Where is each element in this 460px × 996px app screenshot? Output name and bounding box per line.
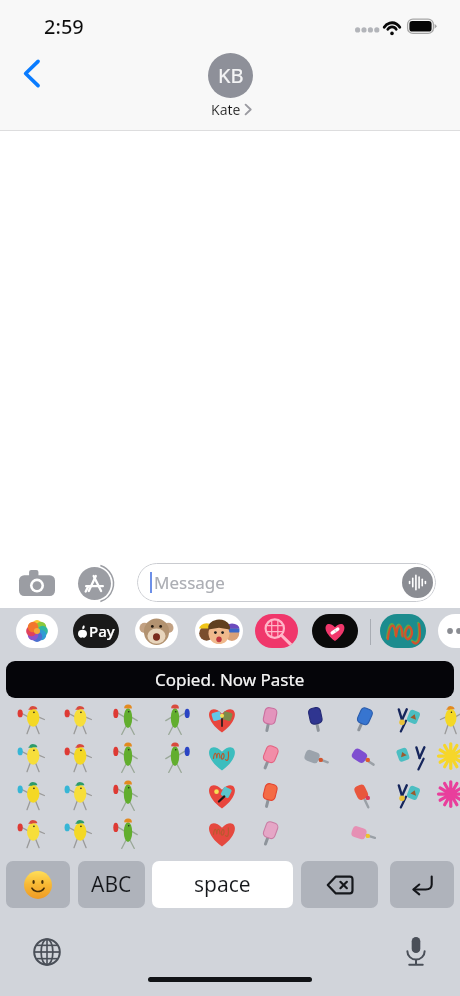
button[interactable]: Change keyboard: [26, 931, 67, 972]
button[interactable]: space: [152, 861, 293, 908]
button[interactable]: Sticker 18: [339, 739, 386, 777]
button[interactable]: Sticker 8: [339, 701, 386, 739]
button[interactable]: Sticker 32: [57, 815, 104, 853]
button[interactable]: Stickers: [312, 614, 358, 648]
button[interactable]: Sticker 31: [10, 815, 57, 853]
button[interactable]: Sticker 13: [104, 739, 151, 777]
button[interactable]: Sticker 19: [386, 739, 433, 777]
staticText: Message: [154, 571, 225, 594]
button[interactable]: Audio message: [402, 567, 433, 598]
button[interactable]: Sticker 36: [245, 815, 292, 853]
button[interactable]: Sticker 9: [386, 701, 433, 739]
button[interactable]: GIF search: [255, 614, 298, 648]
staticText: 2:59: [44, 13, 84, 40]
staticText: KB: [218, 62, 244, 89]
button[interactable]: Sticker 29: [386, 777, 433, 815]
button[interactable]: Sticker 33: [104, 815, 151, 853]
button[interactable]: Sticker 10: [433, 701, 460, 739]
button[interactable]: Sticker 17: [292, 739, 339, 777]
staticText: Pay: [89, 621, 115, 641]
button[interactable]: More apps: [438, 614, 460, 648]
button[interactable]: Mojo: [380, 614, 426, 648]
button[interactable]: Copied. Now Paste: [6, 661, 454, 698]
button[interactable]: Back: [9, 50, 55, 96]
button[interactable]: Message: [137, 563, 436, 602]
button[interactable]: Sticker 6: [245, 701, 292, 739]
button[interactable]: Sticker 11: [10, 739, 57, 777]
button[interactable]: Sticker 12: [57, 739, 104, 777]
button[interactable]: Dictation: [396, 931, 436, 971]
button[interactable]: Sticker 4: [151, 701, 198, 739]
button[interactable]: Return: [390, 861, 454, 908]
staticText: ABC: [91, 870, 132, 899]
button[interactable]: Sticker 22: [57, 777, 104, 815]
staticText: Copied. Now Paste: [155, 668, 305, 691]
button[interactable]: Sticker 35: [198, 815, 245, 853]
button[interactable]: Sticker 30: [433, 777, 460, 815]
button[interactable]: Sticker 20: [433, 739, 460, 777]
button[interactable]: Sticker 15: [198, 739, 245, 777]
button[interactable]: Sticker 2: [57, 701, 104, 739]
button[interactable]: Sticker 25: [198, 777, 245, 815]
button[interactable]: Sticker 21: [10, 777, 57, 815]
button[interactable]: Sticker 38: [339, 815, 386, 853]
staticText: Kate: [211, 100, 241, 119]
button[interactable]: Sticker 26: [245, 777, 292, 815]
button[interactable]: Camera: [18, 569, 56, 597]
button[interactable]: ABC: [78, 861, 145, 908]
button[interactable]: Sticker 1: [10, 701, 57, 739]
button[interactable]: Sticker 16: [245, 739, 292, 777]
button[interactable]: Photos: [16, 614, 58, 648]
button[interactable]: Sticker 28: [339, 777, 386, 815]
button[interactable]: Apple Pay: [73, 614, 119, 648]
button[interactable]: KB: [208, 53, 253, 119]
button[interactable]: Sticker 7: [292, 701, 339, 739]
button[interactable]: Backspace: [301, 861, 378, 908]
button[interactable]: Animoji: [135, 614, 178, 648]
button[interactable]: Memoji: [195, 614, 243, 648]
button[interactable]: Sticker 14: [151, 739, 198, 777]
button[interactable]: Sticker 3: [104, 701, 151, 739]
staticText: space: [194, 870, 251, 899]
button[interactable]: Emoji: [6, 861, 70, 908]
button[interactable]: App Store: [76, 566, 118, 601]
button[interactable]: Sticker 5: [198, 701, 245, 739]
button[interactable]: Sticker 23: [104, 777, 151, 815]
